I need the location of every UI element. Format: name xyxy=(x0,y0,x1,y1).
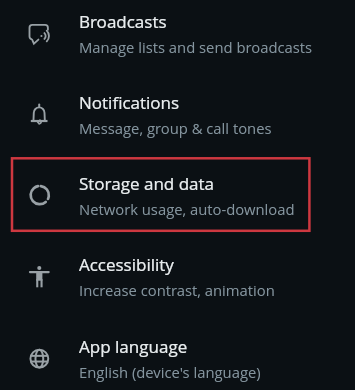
staticText: Network usage, auto-download xyxy=(79,199,295,219)
staticText: Message, group & call tones xyxy=(79,118,272,138)
button[interactable]: Notifications xyxy=(0,74,355,154)
staticText: Manage lists and send broadcasts xyxy=(79,37,313,57)
other: App language xyxy=(25,343,55,373)
button[interactable]: Accessibility xyxy=(0,236,355,316)
button[interactable]: Storage and data xyxy=(0,155,355,235)
staticText: Increase contrast, animation xyxy=(79,280,275,300)
other: Notifications xyxy=(25,99,55,129)
staticText: Broadcasts xyxy=(79,10,167,33)
other: Accessibility xyxy=(25,261,55,291)
button[interactable]: App language xyxy=(0,318,355,390)
staticText: Storage and data xyxy=(79,172,214,195)
staticText: Accessibility xyxy=(79,253,174,276)
staticText: App language xyxy=(79,335,188,358)
staticText: Notifications xyxy=(79,91,180,114)
staticText: English (device's language) xyxy=(79,362,261,382)
other: Storage and data xyxy=(25,180,55,210)
other: Broadcasts xyxy=(25,18,55,48)
button[interactable]: Broadcasts xyxy=(0,0,355,73)
